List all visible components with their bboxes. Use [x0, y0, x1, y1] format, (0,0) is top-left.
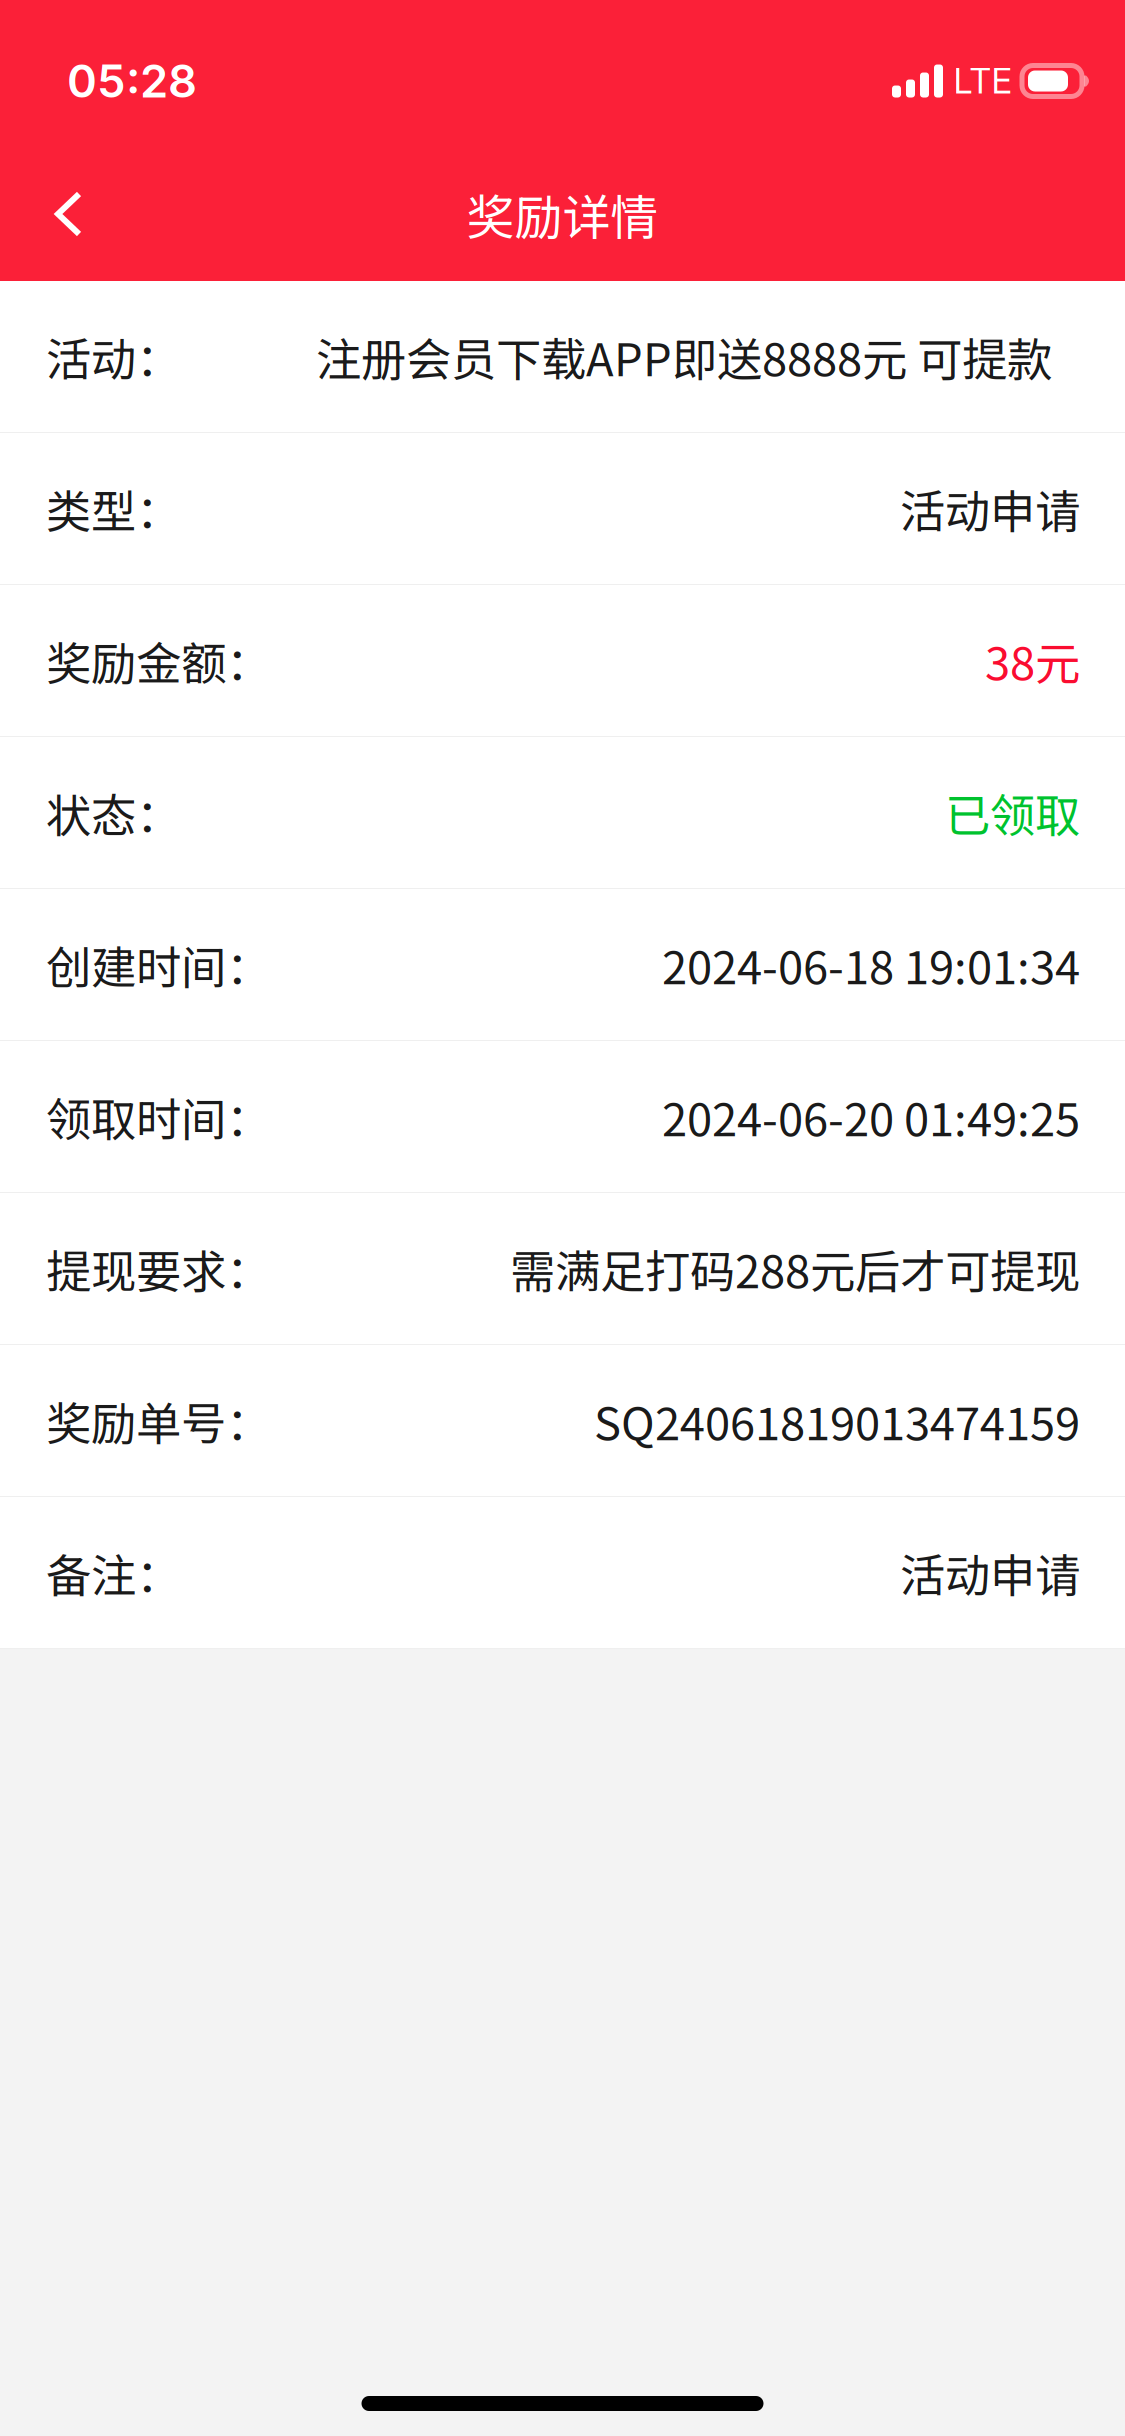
staticText: 需满足打码288元后才可提现 [510, 1236, 1080, 1301]
staticText: 05:28 [67, 54, 197, 108]
staticText: 状态： [46, 780, 181, 845]
staticText: 奖励金额： [46, 628, 271, 693]
staticText: 2024-06-20 01:49:25 [662, 1084, 1080, 1149]
staticText: 创建时间： [46, 932, 271, 997]
staticText: 活动申请 [900, 1540, 1080, 1605]
staticText: 2024-06-18 19:01:34 [662, 932, 1080, 997]
staticText: 领取时间： [46, 1084, 271, 1149]
staticText: LTE [953, 60, 1011, 102]
staticText: 奖励单号： [46, 1388, 271, 1453]
staticText: 奖励详情 [466, 179, 658, 249]
staticText: 备注： [46, 1540, 181, 1605]
staticText: 注册会员下载APP即送8888元 可提款 [316, 324, 1052, 389]
staticText: SQ24061819013474159 [594, 1388, 1080, 1453]
staticText: 活动申请 [900, 476, 1080, 541]
staticText: 38元 [985, 628, 1080, 693]
staticText: 已领取 [945, 780, 1080, 845]
staticText: 提现要求： [46, 1236, 271, 1301]
button[interactable]: 返回 [0, 147, 142, 281]
staticText: 类型： [46, 476, 181, 541]
staticText: 活动： [46, 324, 181, 389]
